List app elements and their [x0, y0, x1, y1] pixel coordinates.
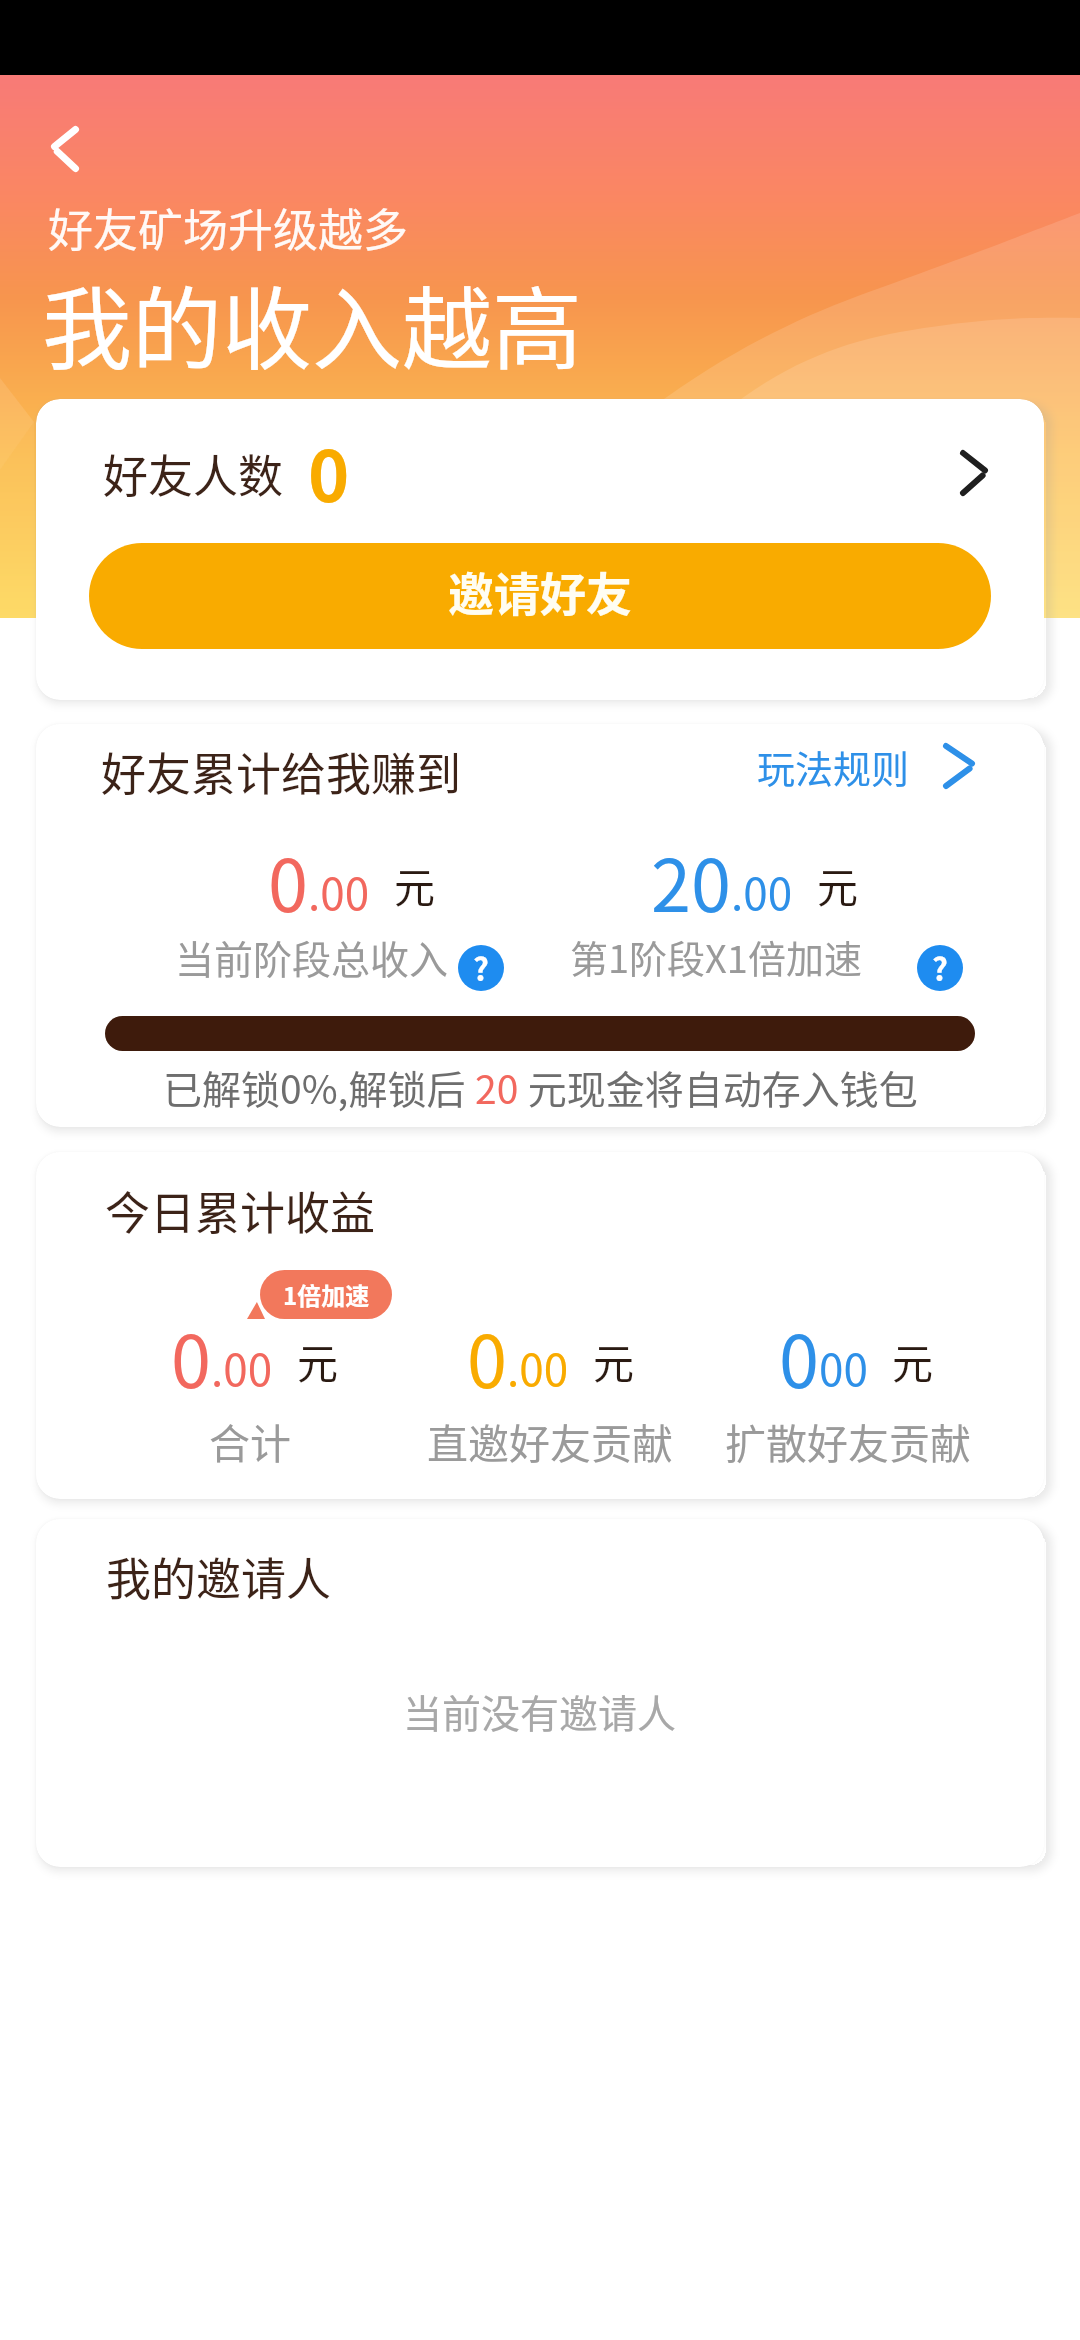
staticText: .00 — [507, 1335, 569, 1399]
button[interactable]: 玩法规则 — [757, 736, 975, 796]
staticText: 扩散好友贡献 — [725, 1411, 971, 1470]
staticText: 已解锁0%,解锁后 — [163, 1059, 475, 1115]
staticText: 我的收入越高 — [42, 258, 582, 388]
staticText: 今日累计收益 — [105, 1178, 376, 1243]
button[interactable]: 好友人数 — [36, 418, 1044, 528]
staticText: 元 — [593, 1331, 634, 1390]
staticText: 好友累计给我赚到 — [101, 739, 462, 804]
button[interactable]: Help — [917, 945, 963, 991]
staticText: 玩法规则 — [757, 739, 910, 794]
staticText: ? — [473, 945, 489, 990]
staticText: 我的邀请人 — [106, 1544, 332, 1609]
staticText: .00 — [731, 859, 793, 923]
staticText: 邀请好友 — [448, 558, 632, 625]
staticText: 合计 — [209, 1411, 291, 1470]
staticText: 元 — [817, 855, 858, 914]
staticText: 当前没有邀请人 — [403, 1683, 677, 1739]
staticText: 元 — [394, 855, 435, 914]
staticText: 0 — [308, 421, 350, 522]
staticText: 00 — [819, 1335, 868, 1399]
staticText: 好友人数 — [103, 441, 284, 506]
staticText: 元 — [892, 1331, 933, 1390]
staticText: 0 — [268, 828, 308, 932]
staticText: 1倍加速 — [283, 1277, 370, 1312]
staticText: 0 — [467, 1304, 507, 1408]
staticText: 元 — [297, 1331, 338, 1390]
staticText: 0 — [171, 1304, 211, 1408]
staticText: 20 — [475, 1059, 519, 1115]
staticText: 当前阶段总收入 — [175, 929, 449, 981]
staticText: .00 — [308, 859, 370, 923]
staticText: 第1阶段X1倍加速 — [570, 929, 862, 981]
button[interactable]: Back — [33, 117, 97, 181]
staticText: ? — [932, 945, 948, 990]
staticText: 直邀好友贡献 — [427, 1411, 673, 1470]
staticText: .00 — [211, 1335, 273, 1399]
button[interactable]: 邀请好友 — [89, 543, 991, 649]
button[interactable]: Help — [458, 945, 504, 991]
staticText: 元现金将自动存入钱包 — [519, 1059, 918, 1115]
staticText: 0 — [779, 1304, 819, 1408]
staticText: 20 — [651, 828, 731, 932]
staticText: 好友矿场升级越多 — [48, 195, 409, 260]
